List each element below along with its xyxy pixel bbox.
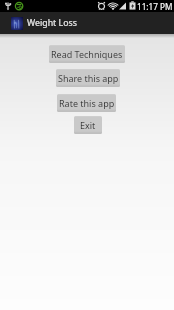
staticText: Rate this app: [59, 97, 115, 109]
button[interactable]: Read Techniques: [49, 45, 125, 63]
staticText: Weight Loss: [27, 17, 77, 29]
staticText: Read Techniques: [51, 48, 123, 60]
button[interactable]: Weight Loss app icon: [0, 12, 84, 34]
staticText: Share this app: [58, 72, 119, 84]
staticText: 11:17 PM: [137, 1, 173, 12]
button[interactable]: Rate this app: [57, 94, 116, 112]
button[interactable]: Share this app: [56, 69, 120, 87]
other: Weight Loss app icon: [11, 17, 23, 30]
staticText: Exit: [80, 119, 96, 131]
button[interactable]: Exit: [74, 116, 102, 134]
